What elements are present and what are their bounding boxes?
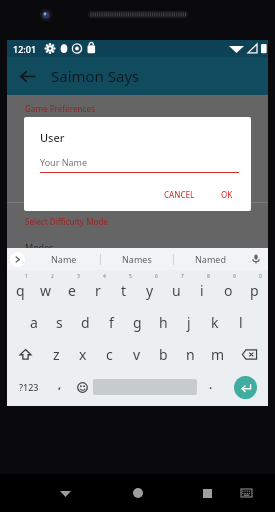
button[interactable]: f — [98, 306, 124, 338]
staticText: p — [250, 281, 259, 300]
staticText: Your Name — [40, 156, 88, 168]
button[interactable]: 7 — [163, 270, 189, 306]
staticText: z — [53, 345, 60, 364]
staticText: v — [133, 345, 141, 364]
staticText: CANCEL — [164, 189, 195, 200]
button[interactable]: Back — [11, 60, 43, 92]
staticText: Game Preferences — [25, 103, 96, 114]
staticText: 12:01 — [13, 43, 37, 55]
staticText: ?123 — [19, 381, 39, 393]
button[interactable]: x — [69, 338, 96, 370]
staticText: o — [224, 281, 233, 300]
staticText: a — [30, 313, 38, 332]
button[interactable]: 8 — [189, 270, 215, 306]
button[interactable]: Voice input — [248, 251, 264, 267]
button[interactable]: Backspace — [231, 338, 267, 370]
staticText: OK — [221, 189, 233, 200]
staticText: Modes — [25, 241, 54, 248]
button[interactable]: v — [123, 338, 150, 370]
button[interactable]: 1 — [8, 270, 33, 306]
button[interactable]: 2 — [33, 270, 59, 306]
staticText: j — [187, 313, 191, 332]
staticText: , — [58, 377, 62, 392]
button[interactable]: 5 — [111, 270, 137, 306]
staticText: e — [68, 281, 76, 300]
staticText: d — [81, 313, 90, 332]
staticText: 9 — [233, 273, 236, 280]
staticText: c — [106, 345, 113, 364]
button[interactable]: c — [96, 338, 123, 370]
button[interactable]: g — [124, 306, 150, 338]
staticText: User — [40, 130, 65, 145]
staticText: u — [172, 281, 181, 300]
staticText: r — [95, 281, 101, 300]
staticText: Name — [51, 253, 77, 265]
staticText: 3 — [77, 273, 80, 280]
staticText: Names — [122, 253, 152, 265]
staticText: m — [211, 345, 225, 364]
button[interactable]: Switch keyboard — [235, 482, 257, 504]
staticText: 0 — [259, 273, 262, 280]
staticText: 5 — [129, 273, 132, 280]
button[interactable]: k — [202, 306, 228, 338]
staticText: Named — [195, 253, 226, 265]
staticText: b — [159, 345, 168, 364]
button[interactable]: b — [150, 338, 177, 370]
button[interactable]: Recent apps — [194, 480, 220, 506]
staticText: i — [200, 281, 204, 300]
button[interactable]: , — [49, 370, 71, 404]
button[interactable]: Back — [52, 480, 78, 506]
staticText: 4 — [103, 273, 106, 280]
staticText: Saimon Says — [51, 66, 140, 86]
button[interactable]: 0 — [241, 270, 267, 306]
button[interactable]: Emoji — [71, 370, 93, 404]
button[interactable]: d — [72, 306, 98, 338]
staticText: Select Difficulty Mode — [25, 216, 108, 227]
button[interactable]: 4 — [85, 270, 111, 306]
button[interactable]: . — [197, 370, 224, 404]
staticText: f — [109, 313, 114, 332]
button[interactable]: 9 — [215, 270, 241, 306]
staticText: s — [56, 313, 63, 332]
button[interactable]: a — [21, 306, 46, 338]
staticText: 2 — [51, 273, 54, 280]
staticText: 8 — [207, 273, 210, 280]
staticText: x — [79, 345, 87, 364]
button[interactable]: Name — [27, 248, 100, 270]
staticText: t — [121, 281, 127, 300]
button[interactable]: 6 — [137, 270, 163, 306]
button[interactable]: CANCEL — [158, 186, 201, 203]
button[interactable]: z — [43, 338, 69, 370]
staticText: l — [239, 313, 243, 332]
staticText: 1 — [25, 273, 28, 280]
staticText: w — [40, 281, 52, 300]
button[interactable]: h — [150, 306, 176, 338]
button[interactable]: ?123 — [9, 370, 49, 404]
button[interactable]: Home — [125, 480, 151, 506]
staticText: g — [133, 313, 142, 332]
staticText: n — [186, 345, 195, 364]
staticText: k — [211, 313, 219, 332]
button[interactable]: Expand suggestions — [10, 252, 25, 267]
staticText: y — [146, 281, 154, 300]
staticText: . — [209, 377, 213, 392]
button[interactable]: n — [177, 338, 204, 370]
button[interactable]: Named — [174, 248, 246, 270]
staticText: 7 — [181, 273, 184, 280]
button[interactable]: Shift — [8, 338, 43, 370]
button[interactable]: l — [228, 306, 254, 338]
staticText: q — [16, 281, 25, 300]
button[interactable]: 3 — [59, 270, 85, 306]
button[interactable]: m — [204, 338, 231, 370]
button[interactable]: Enter — [234, 376, 257, 399]
staticText: 6 — [155, 273, 158, 280]
button[interactable]: OK — [215, 186, 239, 203]
button[interactable]: j — [176, 306, 202, 338]
button[interactable]: s — [46, 306, 72, 338]
staticText: h — [159, 313, 168, 332]
button[interactable]: Names — [101, 248, 173, 270]
